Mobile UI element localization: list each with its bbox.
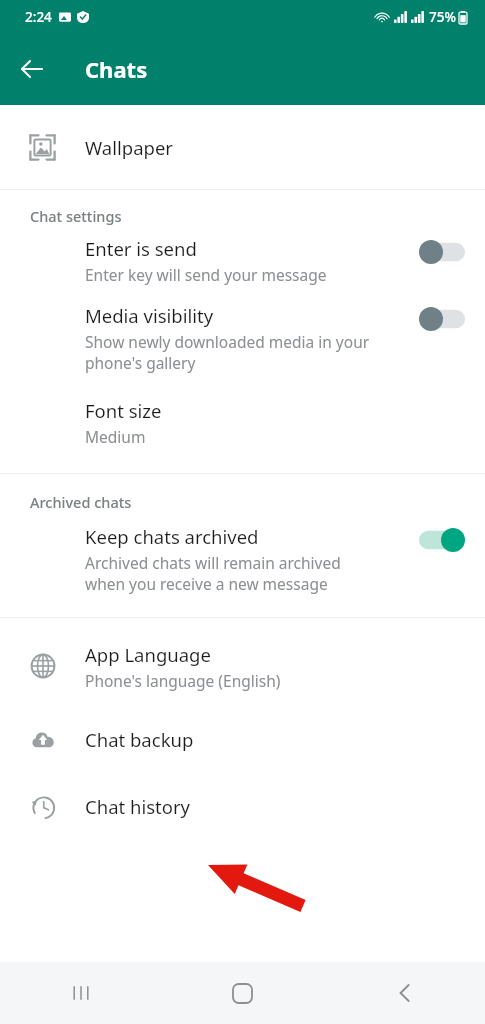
staticText: Archived chats will remain archived when… (85, 552, 341, 595)
staticText: Archived chats (30, 492, 132, 512)
button[interactable]: Wallpaper (0, 105, 485, 189)
button[interactable]: Keep chats archived (0, 524, 485, 595)
staticText: Media visibility (85, 303, 214, 328)
staticText: 75% (429, 8, 456, 26)
button[interactable]: App Language (0, 626, 485, 706)
button[interactable]: Chat history (0, 773, 485, 840)
staticText: Font size (85, 398, 162, 423)
staticText: Show newly downloaded media in your phon… (85, 331, 370, 374)
staticText: Enter key will send your message (85, 264, 327, 285)
button[interactable]: Recents (0, 962, 161, 1024)
button[interactable]: Chat backup (0, 706, 485, 773)
staticText: Phone's language (English) (85, 670, 281, 691)
staticText: Wallpaper (85, 135, 173, 160)
button[interactable]: Media visibility (0, 303, 485, 374)
button[interactable]: On (419, 528, 465, 552)
staticText: App Language (85, 642, 211, 667)
button[interactable]: Enter is send (0, 236, 485, 285)
staticText: Medium (85, 426, 146, 447)
staticText: Chats (85, 54, 148, 84)
button[interactable]: Back (323, 962, 485, 1024)
staticText: Enter is send (85, 236, 197, 261)
staticText: Chat history (85, 794, 191, 819)
staticText: Chat settings (30, 206, 122, 226)
staticText: 2:24 (25, 8, 52, 26)
staticText: Keep chats archived (85, 524, 259, 549)
button[interactable]: Off (419, 240, 465, 264)
button[interactable]: Back (8, 45, 56, 93)
button[interactable]: Off (419, 307, 465, 331)
button[interactable]: Font size (0, 398, 485, 447)
button[interactable]: Home (161, 962, 323, 1024)
staticText: Chat backup (85, 727, 194, 752)
